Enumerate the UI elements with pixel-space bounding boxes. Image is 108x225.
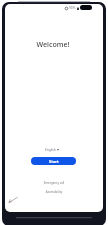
staticText: Start <box>49 159 59 164</box>
staticText: 90% <box>69 6 76 10</box>
button[interactable]: Emergency call <box>5 181 103 185</box>
button[interactable]: Start <box>31 157 76 165</box>
staticText: Welcome! <box>5 39 102 49</box>
staticText: English <box>45 148 56 152</box>
button[interactable]: Accessibility <box>5 190 103 194</box>
button[interactable]: English <box>45 148 59 152</box>
